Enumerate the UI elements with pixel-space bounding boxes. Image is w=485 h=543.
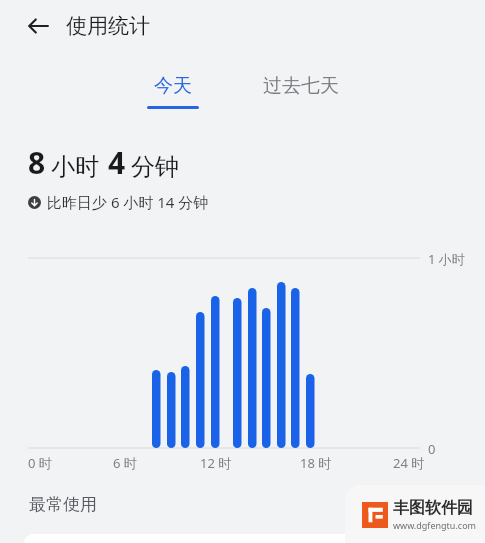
button[interactable]: Back: [20, 8, 56, 44]
staticText: 过去七天: [263, 74, 339, 98]
staticText: 最常使用: [29, 494, 97, 515]
staticText: 1 小时: [428, 250, 465, 268]
staticText: 0: [428, 440, 436, 458]
button[interactable]: 今天: [139, 74, 207, 109]
staticText: 0 时: [28, 454, 52, 472]
staticText: 8: [28, 142, 46, 183]
staticText: 6 时: [113, 454, 137, 472]
staticText: 24 时: [393, 454, 425, 472]
staticText: 比昨日少 6 小时 14 分钟: [47, 192, 209, 212]
staticText: www.dgfengtu.com: [393, 519, 477, 531]
staticText: 4: [108, 142, 126, 183]
staticText: 分钟: [131, 152, 179, 182]
staticText: 今天: [154, 74, 192, 98]
staticText: 使用统计: [66, 13, 150, 39]
button[interactable]: [24, 534, 461, 543]
staticText: 18 时: [300, 454, 332, 472]
staticText: 12 时: [200, 454, 232, 472]
staticText: 丰图软件园: [393, 498, 473, 518]
staticText: 小时: [51, 152, 99, 182]
button[interactable]: 过去七天: [255, 74, 347, 98]
